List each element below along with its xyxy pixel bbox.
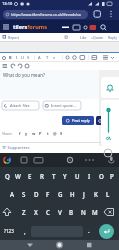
button[interactable]: Report [0, 33, 119, 41]
button[interactable]: M [90, 203, 100, 221]
button[interactable]: Y [60, 167, 70, 185]
button[interactable]: Z [19, 203, 29, 221]
button[interactable] [39, 240, 79, 250]
button[interactable]: Attach files [2, 101, 39, 110]
button[interactable]: S [18, 185, 30, 203]
button[interactable]: f [16, 129, 23, 137]
staticText: ?123 [4, 228, 14, 234]
staticText: +Quote [91, 35, 104, 40]
staticText: R [40, 172, 44, 180]
staticText: S [22, 190, 26, 198]
button[interactable]: L [102, 185, 114, 203]
staticText: I [16, 55, 18, 60]
staticText: H [70, 190, 75, 198]
button[interactable]: E [25, 167, 35, 185]
staticText: y [25, 131, 28, 136]
staticText: T [52, 172, 56, 180]
staticText: f [19, 131, 21, 136]
staticText: Like [80, 35, 87, 40]
staticText: U [75, 172, 80, 180]
staticText: G [58, 190, 63, 198]
button[interactable]: P [107, 167, 117, 185]
button[interactable]: R [37, 167, 47, 185]
staticText: Insert quote... [51, 103, 77, 108]
button[interactable]: What do you mean? [0, 70, 99, 99]
button[interactable]: B [66, 203, 76, 221]
button[interactable]: w [30, 129, 37, 137]
staticText: t [47, 131, 49, 136]
button[interactable]: X [31, 203, 41, 221]
button[interactable]: S [58, 129, 65, 137]
button[interactable]: C [43, 203, 53, 221]
button[interactable] [99, 224, 114, 239]
staticText: 13:10 [2, 1, 13, 6]
staticText: C [46, 208, 50, 216]
staticText: K [94, 190, 98, 198]
staticText: Y [63, 172, 67, 180]
button[interactable]: tilersforums [0, 20, 119, 33]
staticText: B [69, 208, 74, 216]
staticText: Attach files [10, 103, 30, 108]
staticText: W [15, 172, 21, 180]
staticText: , [24, 227, 26, 235]
button[interactable] [0, 240, 39, 250]
button[interactable]: D [30, 185, 42, 203]
button[interactable]: U [72, 167, 82, 185]
staticText: M [92, 208, 98, 216]
button[interactable]: A [6, 185, 18, 203]
staticText: F [46, 190, 50, 198]
staticText: A [10, 190, 15, 198]
button[interactable]: y [23, 129, 30, 137]
staticText: P [110, 172, 114, 180]
button[interactable]: Post reply [62, 116, 94, 125]
staticText: @ [53, 131, 57, 136]
button[interactable] [96, 116, 103, 125]
button[interactable]: H [66, 185, 78, 203]
button[interactable]: Insert quote... [43, 101, 81, 110]
button[interactable]: J [78, 185, 90, 203]
staticText: A [38, 55, 41, 60]
button[interactable]: N [78, 203, 88, 221]
staticText: Q [5, 172, 10, 180]
staticText: S [27, 55, 30, 60]
button[interactable]: P [37, 129, 44, 137]
button[interactable]: I [84, 167, 94, 185]
button[interactable]: https://www.tilersforums.co.uk/threads/s… [3, 10, 88, 19]
staticText: Post reply [72, 118, 90, 123]
button[interactable]: O [96, 167, 106, 185]
staticText: P [39, 131, 42, 136]
button[interactable] [101, 77, 119, 98]
button[interactable] [101, 100, 119, 146]
staticText: I [88, 172, 91, 180]
staticText: Share: [2, 131, 13, 136]
button[interactable]: T [49, 167, 59, 185]
staticText: J [83, 190, 85, 198]
staticText: X [34, 208, 38, 216]
staticText: T [46, 55, 49, 60]
staticText: Z [22, 208, 26, 216]
staticText: S [60, 131, 63, 136]
button[interactable]: G [54, 185, 66, 203]
button[interactable]: Q [2, 167, 12, 185]
staticText: U [21, 55, 24, 60]
button[interactable]: @ [51, 129, 58, 137]
button[interactable]: V [55, 203, 65, 221]
staticText: What do you mean? [3, 72, 45, 78]
button[interactable] [79, 240, 119, 250]
staticText: x [53, 55, 55, 60]
staticText: TF Supporters [2, 145, 30, 151]
button[interactable]: W [13, 167, 23, 185]
button[interactable] [0, 153, 119, 167]
staticText: L [106, 190, 110, 198]
button[interactable]: t [44, 129, 51, 137]
button[interactable]: F [42, 185, 54, 203]
button[interactable]: K [90, 185, 102, 203]
staticText: B [9, 55, 12, 60]
button[interactable]: B [0, 53, 119, 62]
staticText: . [88, 226, 90, 234]
staticText: N [81, 208, 86, 216]
staticText: https://www.tilersforums.co.uk/threads/s… [11, 12, 81, 17]
staticText: O [99, 172, 104, 180]
staticText: D [34, 190, 39, 198]
